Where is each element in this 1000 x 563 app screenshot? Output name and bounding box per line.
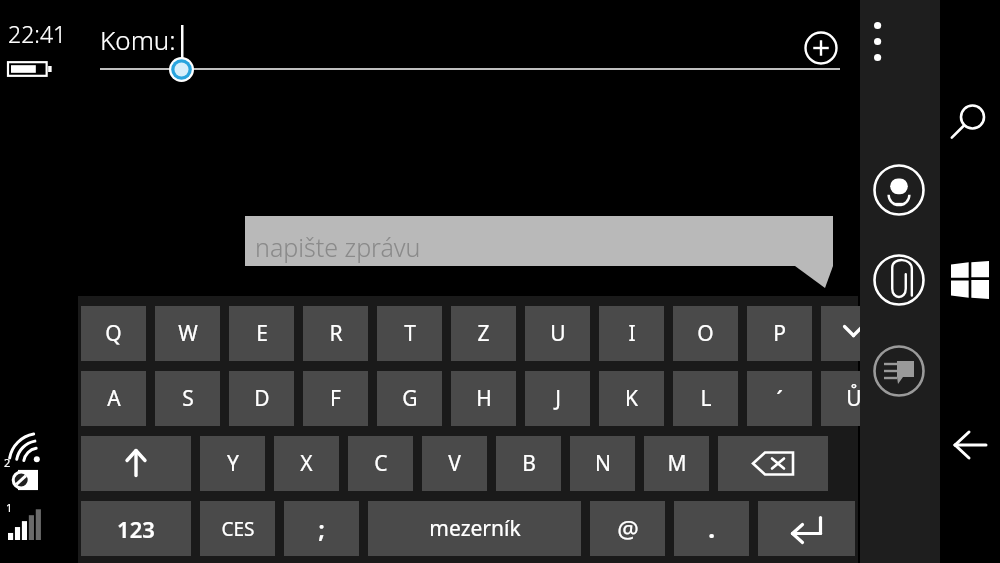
button[interactable]: Enter xyxy=(758,501,855,556)
button[interactable]: R xyxy=(303,306,368,361)
button[interactable]: Hide keyboard xyxy=(821,306,886,361)
button[interactable]: Z xyxy=(451,306,516,361)
button[interactable]: L xyxy=(673,371,738,426)
button[interactable]: . xyxy=(674,501,749,556)
staticText: K xyxy=(625,384,638,413)
button[interactable]: E xyxy=(229,306,294,361)
button[interactable]: 123 xyxy=(81,501,191,556)
button[interactable]: G xyxy=(377,371,442,426)
button[interactable]: W xyxy=(155,306,220,361)
staticText: 22:41 xyxy=(8,18,67,49)
button[interactable]: More options xyxy=(860,8,940,78)
staticText: V xyxy=(448,449,461,478)
button[interactable]: Voice input xyxy=(873,164,925,216)
staticText: D xyxy=(254,384,270,413)
staticText: W xyxy=(178,319,198,348)
button[interactable]: Y xyxy=(200,436,265,491)
button[interactable]: J xyxy=(525,371,590,426)
staticText: J xyxy=(555,384,561,413)
staticText: R xyxy=(329,319,343,348)
staticText: 123 xyxy=(117,514,155,544)
button[interactable]: A xyxy=(81,371,146,426)
staticText: Komu: xyxy=(100,22,176,57)
button[interactable]: ´ xyxy=(747,371,812,426)
staticText: 1 xyxy=(6,500,13,515)
staticText: G xyxy=(402,384,418,413)
staticText: . xyxy=(708,512,715,545)
button[interactable]: Backspace xyxy=(718,436,828,491)
button[interactable]: I xyxy=(599,306,664,361)
button[interactable]: @ xyxy=(590,501,665,556)
button[interactable]: mezerník xyxy=(368,501,581,556)
staticText: napište zprávu xyxy=(255,230,421,264)
staticText: O xyxy=(697,319,714,348)
button[interactable]: U xyxy=(525,306,590,361)
staticText: Z xyxy=(477,319,490,348)
button[interactable]: N xyxy=(570,436,635,491)
staticText: X xyxy=(300,449,313,478)
button[interactable]: X xyxy=(274,436,339,491)
button[interactable]: S xyxy=(155,371,220,426)
button[interactable]: Q xyxy=(81,306,146,361)
button[interactable]: H xyxy=(451,371,516,426)
button[interactable]: Add recipient xyxy=(803,30,839,66)
button[interactable]: Search xyxy=(945,96,995,146)
button[interactable]: Attach xyxy=(873,254,925,306)
staticText: 2 xyxy=(4,455,11,470)
button[interactable]: Conversations xyxy=(873,345,925,397)
button[interactable]: CES xyxy=(200,501,275,556)
button[interactable]: M xyxy=(644,436,709,491)
staticText: mezerník xyxy=(429,514,521,543)
button[interactable]: V xyxy=(422,436,487,491)
button[interactable]: Start xyxy=(951,261,989,299)
staticText: U xyxy=(550,319,566,348)
button[interactable]: P xyxy=(747,306,812,361)
staticText: B xyxy=(522,449,536,478)
staticText: C xyxy=(374,449,388,478)
staticText: M xyxy=(667,449,687,478)
button[interactable]: Ů xyxy=(821,371,886,426)
staticText: E xyxy=(256,319,268,348)
staticText: F xyxy=(330,384,341,413)
staticText: L xyxy=(700,384,712,413)
button[interactable]: Komu: xyxy=(100,22,840,74)
button[interactable]: K xyxy=(599,371,664,426)
button[interactable]: F xyxy=(303,371,368,426)
staticText: H xyxy=(476,384,492,413)
button[interactable]: T xyxy=(377,306,442,361)
button[interactable] xyxy=(245,216,833,288)
staticText: CES xyxy=(221,516,255,542)
staticText: N xyxy=(595,449,611,478)
button[interactable]: Back xyxy=(945,420,995,470)
staticText: @ xyxy=(617,512,639,545)
staticText: Y xyxy=(227,449,239,478)
button[interactable]: ; xyxy=(284,501,359,556)
staticText: S xyxy=(182,384,194,413)
staticText: T xyxy=(404,319,416,348)
button[interactable]: C xyxy=(348,436,413,491)
staticText: P xyxy=(773,319,786,348)
staticText: I xyxy=(628,319,636,348)
staticText: ; xyxy=(318,512,325,545)
button[interactable]: O xyxy=(673,306,738,361)
staticText: Ů xyxy=(846,384,862,413)
button[interactable]: Shift xyxy=(81,436,191,491)
staticText: Q xyxy=(105,319,122,348)
staticText: A xyxy=(107,384,121,413)
staticText: ´ xyxy=(776,382,783,415)
button[interactable]: D xyxy=(229,371,294,426)
button[interactable]: B xyxy=(496,436,561,491)
